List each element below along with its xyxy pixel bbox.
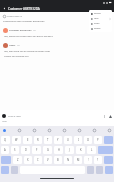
staticText: Y	[57, 138, 59, 142]
staticText: A	[4, 148, 6, 152]
button[interactable]: O	[84, 136, 92, 144]
button[interactable]: Keyboard tool	[2, 128, 7, 133]
button[interactable]: Tags	[89, 16, 112, 21]
staticText: H	[58, 148, 60, 152]
staticText: Customer #887832DA	[8, 7, 40, 11]
button[interactable]: U	[64, 136, 72, 144]
button[interactable]: Q	[1, 136, 10, 144]
staticText: G	[47, 148, 49, 152]
staticText: D	[25, 148, 27, 152]
button[interactable]: R	[34, 136, 42, 144]
button[interactable]: Details	[89, 11, 112, 16]
staticText: B	[57, 158, 59, 162]
button[interactable]: P	[94, 136, 102, 144]
button[interactable]: Spam	[89, 21, 112, 26]
button[interactable]: S	[11, 146, 19, 154]
button[interactable]: Backspace	[104, 136, 113, 144]
staticText: Q	[4, 138, 7, 142]
staticText: Thanks for reaching out	[4, 55, 29, 58]
staticText: R	[37, 138, 39, 142]
button[interactable]: C	[34, 156, 42, 164]
button[interactable]: L	[87, 146, 96, 154]
staticText: Delete	[94, 27, 101, 30]
staticText: U	[67, 138, 69, 142]
button[interactable]: Send	[108, 114, 112, 118]
button[interactable]: B	[54, 156, 62, 164]
staticText: O	[87, 138, 90, 142]
staticText: 1h	[33, 29, 36, 32]
staticText: Agent	[9, 44, 16, 47]
button[interactable]: I	[74, 136, 82, 144]
staticText: Z	[17, 158, 19, 162]
staticText: Hey, would you know how I am able to bac…	[4, 35, 54, 38]
button[interactable]: Keyboard tool	[17, 128, 22, 133]
staticText: !	[88, 158, 89, 162]
button[interactable]: G	[43, 146, 52, 154]
button[interactable]: K	[76, 146, 85, 154]
button[interactable]: Enter	[98, 146, 113, 154]
button[interactable]: Y	[54, 136, 62, 144]
staticText: W	[15, 138, 18, 142]
staticText: N	[67, 158, 69, 162]
button[interactable]: H	[54, 146, 63, 154]
staticText: F	[36, 148, 38, 152]
staticText: Spam	[94, 22, 100, 25]
button[interactable]: Back	[0, 5, 8, 12]
staticText: P	[97, 138, 99, 142]
button[interactable]: Return	[105, 166, 113, 174]
button[interactable]: Keyboard tool	[47, 128, 52, 133]
button[interactable]: X	[24, 156, 32, 164]
staticText: V	[47, 158, 49, 162]
button[interactable]: T	[44, 136, 52, 144]
button[interactable]: F	[32, 146, 41, 154]
staticText: X	[27, 158, 29, 162]
button[interactable]: Symbols	[1, 166, 9, 174]
button[interactable]: V	[44, 156, 52, 164]
button[interactable]: !	[84, 156, 92, 164]
staticText: S	[14, 148, 16, 152]
staticText: Details	[94, 12, 101, 15]
staticText: T	[47, 138, 49, 142]
button[interactable]: Shift	[1, 156, 11, 164]
button[interactable]: Keyboard tool	[92, 128, 97, 133]
staticText: L	[91, 148, 93, 152]
staticText: Hey, we'll send you an backup provider c…	[4, 50, 51, 53]
staticText: M	[77, 158, 80, 162]
button[interactable]: Z	[13, 156, 22, 164]
button[interactable]: Keyboard tool	[62, 128, 67, 133]
button[interactable]: M	[74, 156, 82, 164]
button[interactable]: Backspace	[104, 156, 113, 164]
staticText: I	[78, 138, 79, 142]
staticText: Ticket #753512	[7, 15, 22, 18]
button[interactable]: Keyboard tool	[32, 128, 37, 133]
button[interactable]: Delete	[89, 26, 112, 31]
staticText: ?	[97, 158, 99, 162]
staticText: 1h	[17, 44, 20, 47]
staticText: Customer #887832DA	[9, 29, 32, 32]
staticText: J	[69, 148, 70, 152]
staticText: C	[37, 158, 39, 162]
button[interactable]: J	[65, 146, 74, 154]
button[interactable]: Keyboard tool	[77, 128, 82, 133]
staticText: E	[27, 138, 29, 142]
staticText: Conversation with Customer #887832DA	[3, 20, 45, 23]
button[interactable]: Keyboard tool	[107, 128, 112, 133]
button[interactable]: D	[21, 146, 30, 154]
staticText: Tags	[94, 17, 99, 20]
button[interactable]: W	[12, 136, 21, 144]
button[interactable]: E	[23, 136, 32, 144]
button[interactable]: N	[64, 156, 72, 164]
staticText: K	[80, 148, 82, 152]
staticText: Write a reply	[8, 115, 21, 118]
button[interactable]: ?	[94, 156, 102, 164]
button[interactable]: A	[1, 146, 9, 154]
button[interactable]: More options	[102, 114, 106, 118]
staticText: Note	[2, 120, 7, 123]
